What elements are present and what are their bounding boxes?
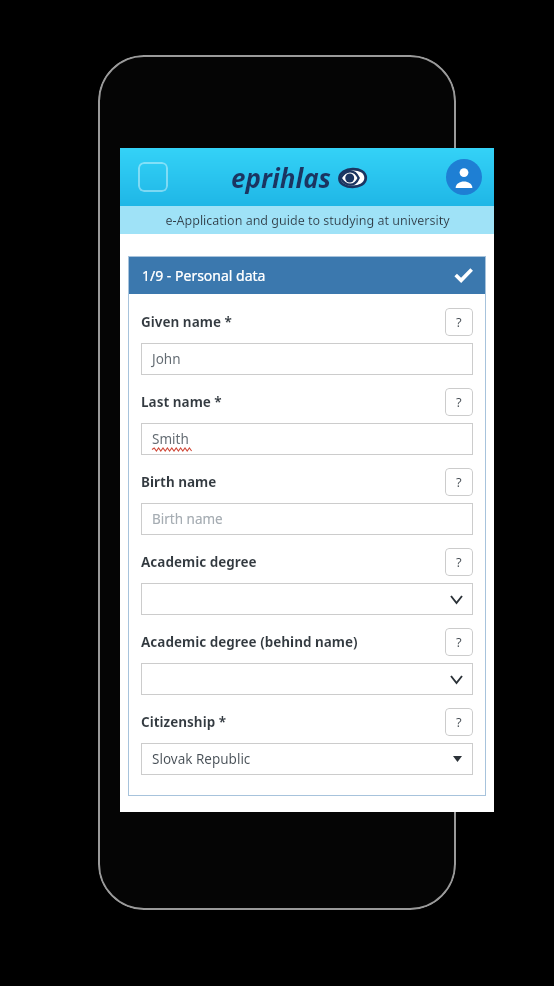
staticText: Slovak Republic (152, 750, 251, 768)
button[interactable]: Birth name (141, 503, 473, 535)
staticText: Birth name (152, 510, 223, 528)
button[interactable]: Account (446, 159, 482, 195)
button[interactable]: Slovak Republic (141, 743, 473, 775)
button[interactable]: John (141, 343, 473, 375)
staticText: ? (456, 313, 462, 331)
button[interactable]: Help for Academic degree (445, 548, 473, 576)
button[interactable]: Help for Academic degree (behind name) (445, 628, 473, 656)
button[interactable]: Help for Given name (445, 308, 473, 336)
button[interactable]: 1/9 - Personal data (128, 256, 486, 294)
staticText: e-Application and guide to studying at u… (165, 212, 450, 229)
staticText: John (152, 350, 181, 368)
button[interactable]: Select option (141, 663, 473, 695)
button[interactable]: Select option (141, 583, 473, 615)
staticText: Academic degree (141, 553, 257, 571)
staticText: eprihlas (231, 160, 331, 195)
staticText: ? (456, 473, 462, 491)
staticText: Birth name (141, 473, 217, 491)
staticText: ? (456, 633, 462, 651)
staticText: Citizenship * (141, 713, 227, 731)
staticText: ? (456, 553, 462, 571)
staticText: Academic degree (behind name) (141, 633, 358, 651)
staticText: 1/9 - Personal data (142, 266, 266, 285)
button[interactable]: Help for Citizenship (445, 708, 473, 736)
staticText: ? (456, 713, 462, 731)
staticText: ? (456, 393, 462, 411)
button[interactable]: Help for Last name (445, 388, 473, 416)
staticText: Given name * (141, 313, 232, 331)
staticText: Last name * (141, 393, 222, 411)
button[interactable]: Menu (138, 162, 168, 192)
button[interactable]: Help for Birth name (445, 468, 473, 496)
staticText: Smith (152, 430, 189, 448)
button[interactable]: Smith (141, 423, 473, 455)
